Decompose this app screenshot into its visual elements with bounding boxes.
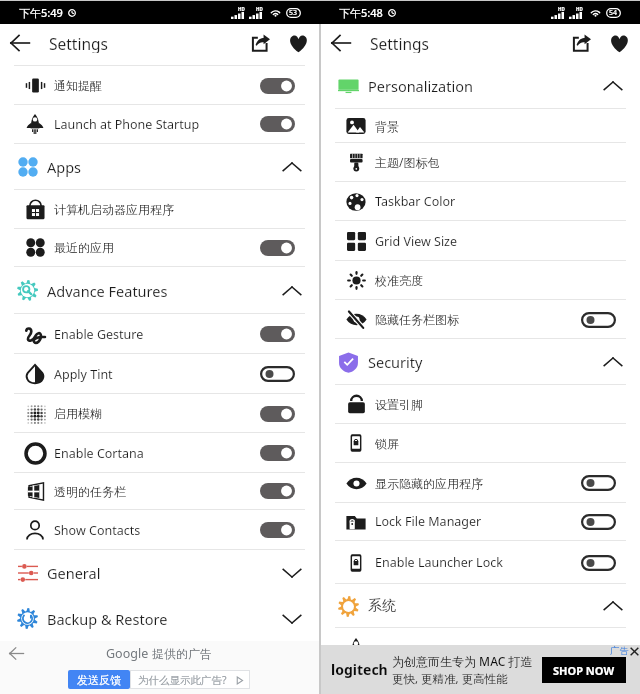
staticText: HD [576, 6, 583, 12]
staticText: 校准亮度 [375, 273, 616, 288]
button[interactable]: Apps [0, 144, 319, 190]
staticText: 计算机启动器应用程序 [54, 202, 295, 217]
staticText: HD [238, 6, 245, 12]
button[interactable]: 设置引脚 [321, 385, 640, 424]
button[interactable]: Backup & Restore [0, 596, 319, 642]
staticText: 系统 [368, 597, 603, 615]
button[interactable]: SHOP NOW [542, 657, 626, 683]
staticText: 设置引脚 [375, 397, 616, 412]
staticText: Security [368, 352, 603, 372]
staticText: Settings [370, 33, 429, 53]
staticText: 为什么显示此广告? [138, 673, 227, 687]
button[interactable]: General [0, 550, 319, 596]
staticText: Lock File Manager [375, 513, 581, 530]
button[interactable]: 为什么显示此广告? [130, 670, 250, 689]
button[interactable]: 校准亮度 [321, 260, 640, 300]
button[interactable]: 锁屏 [321, 423, 640, 463]
staticText: 更快, 更精准, 更高性能 [392, 671, 508, 687]
staticText: HD [558, 6, 565, 12]
button[interactable]: 发送反馈 [68, 670, 130, 689]
staticText: SHOP NOW [553, 663, 615, 678]
button[interactable]: Personalization [321, 62, 640, 109]
staticText: 最近的应用 [54, 240, 260, 255]
staticText: Advance Features [47, 281, 282, 301]
staticText: 显示隐藏的应用程序 [375, 476, 581, 491]
button[interactable]: Enable Cortana [0, 433, 319, 473]
staticText: Backup & Restore [47, 609, 282, 629]
staticText: 锁屏 [375, 436, 616, 451]
button[interactable]: Back [8, 33, 32, 53]
staticText: 53 [289, 8, 298, 18]
staticText: Apps [47, 157, 282, 177]
staticText: 透明的任务栏 [54, 484, 260, 499]
button[interactable]: Favorite [286, 33, 310, 53]
button[interactable]: 最近的应用 [0, 228, 319, 267]
button[interactable]: 系统 [321, 584, 640, 628]
staticText: 背景 [375, 119, 616, 134]
staticText: 广告 [610, 645, 629, 657]
staticText: Settings [49, 33, 108, 53]
staticText: Grid View Size [375, 233, 616, 250]
staticText: Taskbar Color [375, 193, 616, 210]
staticText: 下午5:49 [19, 5, 63, 20]
staticText: General [47, 563, 282, 583]
button[interactable] [321, 628, 640, 667]
button[interactable]: Enable Launcher Lock [321, 541, 640, 584]
button[interactable]: Enable Gesture [0, 314, 319, 354]
button[interactable]: Apply Tint [0, 354, 319, 394]
button[interactable]: Grid View Size [321, 221, 640, 261]
button[interactable]: 计算机启动器应用程序 [0, 190, 319, 229]
staticText: logitech [331, 660, 388, 679]
button[interactable]: 透明的任务栏 [0, 472, 319, 510]
staticText: Apply Tint [54, 366, 260, 383]
button[interactable]: 显示隐藏的应用程序 [321, 463, 640, 503]
staticText [375, 640, 616, 656]
staticText: 为创意而生专为 MAC 打造 [392, 653, 533, 669]
staticText: 54 [609, 8, 618, 18]
button[interactable]: Launch at Phone Startup [0, 104, 319, 144]
button[interactable]: 背景 [321, 109, 640, 143]
button[interactable]: Advance Features [0, 267, 319, 314]
staticText: HD [256, 6, 263, 12]
button[interactable]: Show Contacts [0, 510, 319, 550]
button[interactable]: 启用模糊 [0, 394, 319, 433]
button[interactable]: 主题/图标包 [321, 142, 640, 182]
staticText: Launch at Phone Startup [54, 116, 260, 133]
staticText: 提供的广告 [152, 646, 212, 661]
staticText: 发送反馈 [77, 673, 121, 687]
staticText: 通知提醒 [54, 78, 260, 93]
button[interactable]: Share [569, 33, 593, 53]
staticText: Enable Cortana [54, 445, 260, 462]
button[interactable]: 通知提醒 [0, 66, 319, 105]
button[interactable]: Favorite [607, 33, 631, 53]
staticText: Show Contacts [54, 522, 260, 539]
button[interactable]: 隐藏任务栏图标 [321, 300, 640, 339]
staticText: Google [106, 645, 152, 662]
staticText: 隐藏任务栏图标 [375, 312, 581, 327]
button[interactable]: Security [321, 339, 640, 385]
button[interactable]: Back [329, 33, 353, 53]
button[interactable]: Lock File Manager [321, 502, 640, 541]
button[interactable]: Share [248, 33, 272, 53]
button[interactable]: Taskbar Color [321, 182, 640, 221]
staticText: Personalization [368, 76, 603, 96]
staticText: Enable Launcher Lock [375, 554, 581, 571]
staticText: 主题/图标包 [375, 154, 616, 170]
staticText: 下午5:48 [339, 5, 383, 20]
staticText: 启用模糊 [54, 406, 260, 421]
staticText: Enable Gesture [54, 326, 260, 343]
